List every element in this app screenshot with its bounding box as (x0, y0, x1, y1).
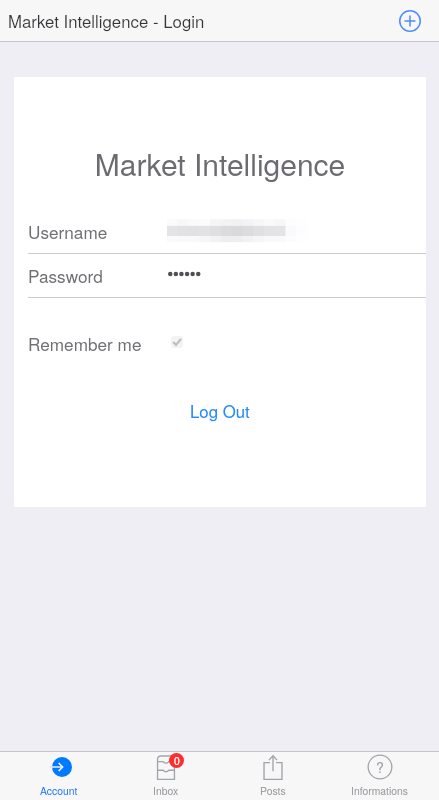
button[interactable]: 0 (112, 752, 219, 800)
button[interactable]: Log Out (176, 392, 264, 430)
staticText: Informations (351, 783, 409, 798)
staticText: Market Intelligence (14, 142, 426, 185)
button[interactable]: ? (326, 752, 433, 800)
staticText: Market Intelligence - Login (8, 9, 205, 33)
staticText: Password (28, 263, 103, 285)
staticText: ? (376, 757, 384, 777)
staticText: 0 (174, 753, 180, 768)
staticText: Log Out (190, 399, 250, 423)
button[interactable]: Add (399, 10, 421, 32)
staticText: Remember me (28, 331, 142, 353)
button[interactable]: Remember me checkbox (171, 336, 183, 348)
staticText: Inbox (153, 783, 179, 798)
staticText: Posts (260, 783, 286, 798)
button[interactable]: Posts (219, 752, 326, 800)
button[interactable]: Account (6, 752, 112, 800)
staticText: Account (40, 783, 78, 798)
staticText: Username (28, 219, 108, 241)
